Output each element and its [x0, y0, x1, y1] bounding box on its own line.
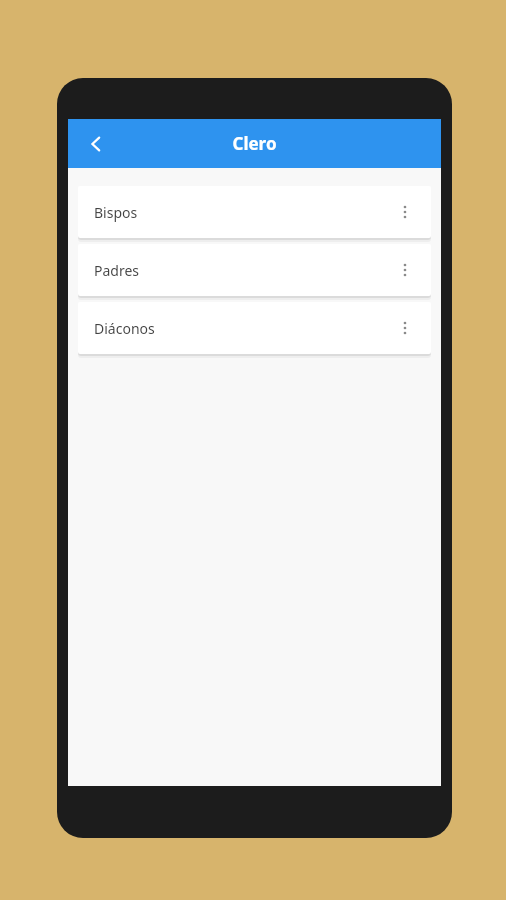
button[interactable]: More options — [389, 312, 421, 344]
button[interactable]: Diáconos — [78, 302, 431, 354]
staticText: Clero — [68, 132, 441, 155]
button[interactable]: More options — [389, 254, 421, 286]
staticText: Bispos — [94, 203, 138, 222]
button[interactable]: Back — [76, 124, 116, 164]
button[interactable]: Padres — [78, 244, 431, 296]
button[interactable]: More options — [389, 196, 421, 228]
staticText: Diáconos — [94, 319, 155, 338]
staticText: Padres — [94, 261, 140, 280]
button[interactable]: Bispos — [78, 186, 431, 238]
